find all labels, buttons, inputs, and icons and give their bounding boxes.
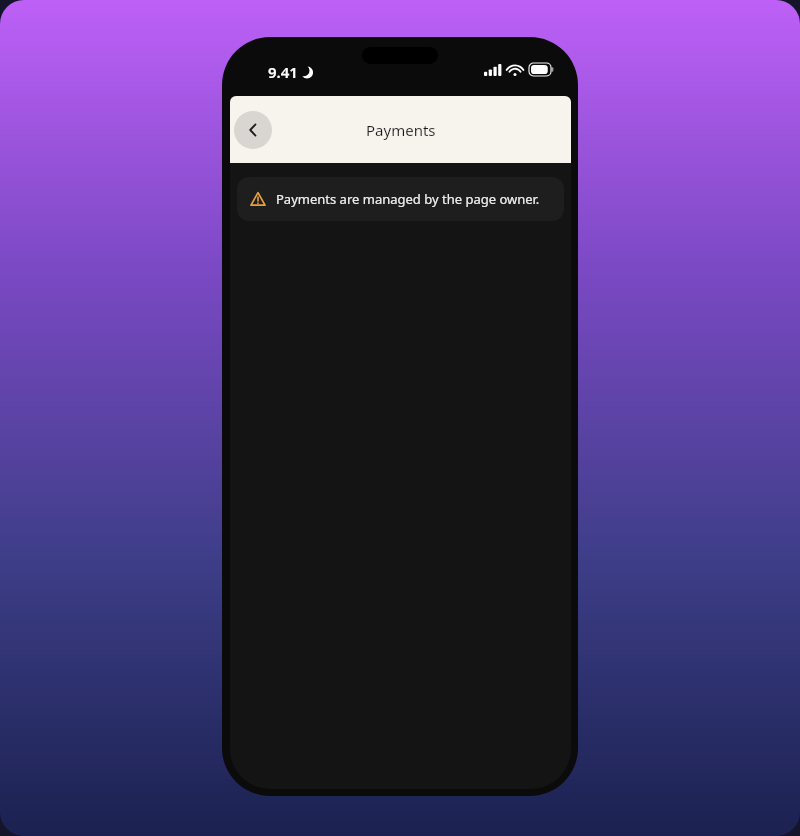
staticText: Payments are managed by the page owner. <box>276 190 540 208</box>
staticText: Payments <box>366 120 436 140</box>
button[interactable]: Payments are managed by the page owner. <box>237 177 564 221</box>
button[interactable]: Back <box>234 111 272 149</box>
staticText: 9.41 <box>268 62 298 82</box>
